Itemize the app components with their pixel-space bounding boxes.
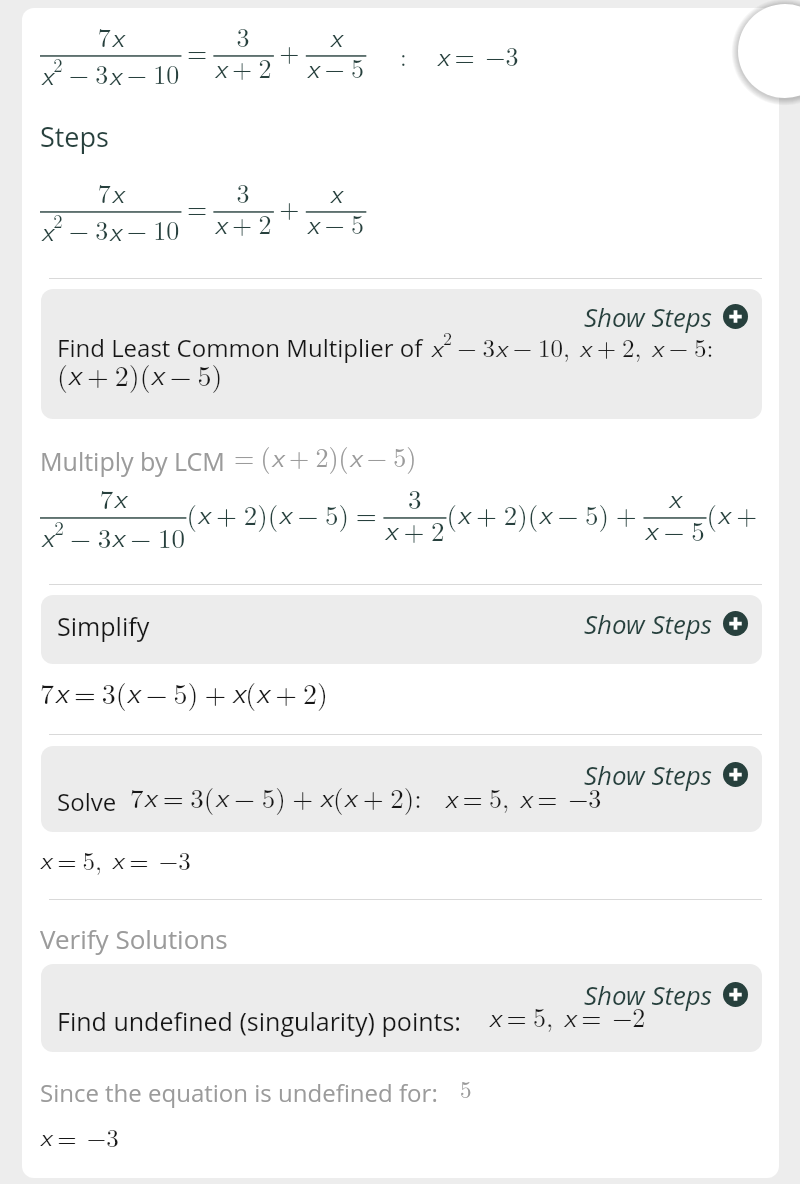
- button[interactable]: Show Steps: [41, 746, 762, 832]
- staticText: Show Steps: [584, 977, 712, 1012]
- staticText: Find Least Common Multiplier of: [57, 331, 423, 364]
- button[interactable]: Show Steps: [41, 289, 762, 419]
- staticText: Verify Solutions: [40, 921, 228, 956]
- button[interactable]: Show Steps: [584, 757, 748, 792]
- button[interactable]: Show Steps: [41, 964, 762, 1052]
- staticText: Steps: [40, 118, 109, 155]
- button[interactable]: Show Steps: [584, 977, 748, 1012]
- button[interactable]: Show Steps: [584, 299, 748, 334]
- staticText: Show Steps: [584, 757, 712, 792]
- button[interactable]: Menu: [738, 4, 800, 98]
- button[interactable]: Show Steps: [41, 595, 762, 664]
- staticText: Simplify: [57, 609, 150, 643]
- staticText: Show Steps: [584, 606, 712, 641]
- button[interactable]: Show Steps: [584, 606, 748, 641]
- staticText: Multiply by LCM: [40, 444, 225, 478]
- staticText: Since the equation is undefined for:: [40, 1076, 438, 1109]
- staticText: Solve: [57, 785, 117, 818]
- staticText: Find undefined (singularity) points:: [57, 1004, 461, 1038]
- staticText: Show Steps: [584, 299, 712, 334]
